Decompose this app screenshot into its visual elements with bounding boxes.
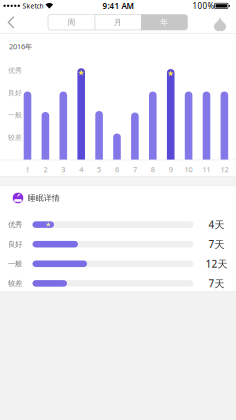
staticText: 8 [151, 164, 155, 174]
staticText: 较差 [8, 133, 22, 142]
staticText: 2016年 [9, 41, 32, 51]
staticText: 3 [61, 164, 65, 174]
staticText: 周 [67, 17, 75, 27]
staticText: 一般 [8, 259, 22, 268]
staticText: 优秀 [8, 66, 22, 75]
staticText: 7天 [208, 277, 224, 290]
staticText: 较差 [8, 279, 22, 288]
staticText: 12 [220, 164, 228, 174]
staticText: 4天 [208, 218, 224, 231]
staticText: 4 [79, 164, 83, 174]
button[interactable]: 月 [94, 14, 141, 30]
staticText: 良好 [8, 240, 22, 249]
staticText: 7天 [208, 237, 224, 251]
staticText: 良好 [8, 89, 22, 97]
staticText: 10 [185, 164, 193, 174]
button[interactable] [0, 11, 22, 33]
staticText: 优秀 [8, 220, 22, 229]
staticText: 7 [133, 164, 137, 174]
button[interactable] [208, 14, 231, 34]
button[interactable]: 年 [141, 14, 187, 30]
staticText: 睡眠详情 [28, 193, 60, 203]
staticText: 一般 [8, 111, 22, 120]
staticText: 1 [25, 164, 29, 174]
staticText: 11 [202, 164, 210, 174]
staticText: Sketch [22, 2, 43, 10]
button[interactable]: 周 [48, 14, 94, 30]
staticText: 6 [115, 164, 119, 174]
staticText: 5 [97, 164, 101, 174]
staticText: 9:41 AM [102, 1, 133, 11]
staticText: 12天 [205, 257, 227, 271]
staticText: 100% [192, 1, 214, 11]
staticText: 年 [160, 17, 168, 27]
staticText: 月 [114, 17, 122, 27]
staticText: 2 [43, 164, 47, 174]
staticText: 9 [169, 164, 173, 174]
